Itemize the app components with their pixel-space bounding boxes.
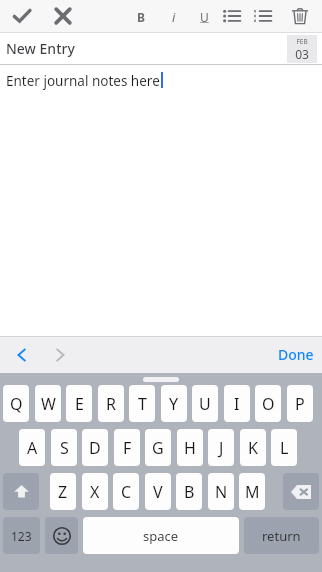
- button[interactable]: K: [240, 429, 266, 466]
- button[interactable]: U: [192, 385, 218, 422]
- staticText: O: [262, 393, 275, 415]
- staticText: B: [184, 481, 195, 503]
- button[interactable]: Delete: [286, 2, 314, 30]
- button[interactable]: Emoji: [45, 517, 78, 554]
- button[interactable]: Y: [161, 385, 187, 422]
- staticText: 03: [295, 46, 309, 62]
- button[interactable]: H: [177, 429, 203, 466]
- staticText: Enter journal notes here: [6, 72, 160, 90]
- button[interactable]: A: [19, 429, 45, 466]
- button[interactable]: S: [51, 429, 77, 466]
- staticText: E: [75, 393, 84, 415]
- staticText: D: [89, 437, 101, 459]
- button[interactable]: Next: [44, 336, 76, 373]
- button[interactable]: M: [239, 473, 265, 510]
- staticText: T: [138, 393, 147, 415]
- button[interactable]: L: [271, 429, 297, 466]
- staticText: FEB: [296, 37, 308, 46]
- button[interactable]: E: [66, 385, 92, 422]
- button[interactable]: i: [164, 7, 184, 27]
- button[interactable]: W: [35, 385, 61, 422]
- button[interactable]: B: [176, 473, 202, 510]
- staticText: S: [60, 437, 69, 459]
- staticText: K: [248, 437, 258, 459]
- button[interactable]: space: [83, 517, 239, 554]
- staticText: U: [200, 9, 209, 25]
- button[interactable]: Shift: [3, 473, 39, 510]
- staticText: C: [121, 481, 132, 503]
- button[interactable]: G: [145, 429, 171, 466]
- staticText: return: [262, 527, 301, 545]
- button[interactable]: Q: [3, 385, 29, 422]
- button[interactable]: B: [131, 7, 151, 27]
- button[interactable]: V: [145, 473, 171, 510]
- button[interactable]: FEB: [287, 35, 317, 63]
- button[interactable]: Done: [278, 336, 314, 373]
- button[interactable]: R: [98, 385, 124, 422]
- staticText: Z: [58, 481, 68, 503]
- staticText: U: [199, 393, 211, 415]
- staticText: P: [295, 393, 305, 415]
- staticText: F: [123, 437, 132, 459]
- button[interactable]: Bulleted list: [218, 2, 246, 30]
- button[interactable]: Save: [8, 2, 36, 30]
- button[interactable]: O: [255, 385, 281, 422]
- button[interactable]: return: [244, 517, 319, 554]
- staticText: N: [215, 481, 228, 503]
- button[interactable]: Backspace: [283, 473, 319, 510]
- staticText: J: [219, 437, 224, 459]
- button[interactable]: Cancel: [49, 2, 77, 30]
- staticText: Done: [278, 345, 314, 364]
- staticText: R: [106, 393, 116, 415]
- button[interactable]: Numbered list: [249, 2, 277, 30]
- button[interactable]: U: [194, 7, 214, 27]
- button[interactable]: I: [224, 385, 250, 422]
- button[interactable]: N: [208, 473, 234, 510]
- staticText: M: [245, 481, 260, 503]
- button[interactable]: Z: [50, 473, 76, 510]
- staticText: W: [41, 393, 56, 415]
- staticText: B: [137, 9, 145, 25]
- staticText: space: [143, 527, 179, 545]
- staticText: H: [184, 437, 196, 459]
- button[interactable]: T: [129, 385, 155, 422]
- staticText: Q: [10, 393, 23, 415]
- button[interactable]: P: [287, 385, 313, 422]
- button[interactable]: F: [114, 429, 140, 466]
- staticText: Y: [169, 393, 179, 415]
- staticText: L: [280, 437, 289, 459]
- button[interactable]: C: [113, 473, 139, 510]
- button[interactable]: X: [82, 473, 108, 510]
- button[interactable]: 123: [3, 517, 40, 554]
- button[interactable]: J: [208, 429, 234, 466]
- staticText: I: [234, 393, 240, 415]
- button[interactable]: Previous: [6, 336, 38, 373]
- staticText: 123: [11, 528, 32, 544]
- staticText: i: [172, 8, 176, 26]
- button[interactable]: D: [82, 429, 108, 466]
- staticText: X: [90, 481, 100, 503]
- staticText: A: [27, 437, 38, 459]
- staticText: V: [153, 481, 163, 503]
- staticText: New Entry: [6, 39, 75, 58]
- staticText: G: [152, 437, 164, 459]
